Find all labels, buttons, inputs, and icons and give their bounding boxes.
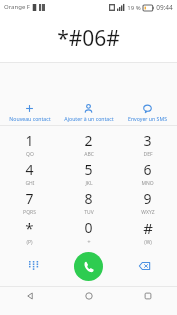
button[interactable]: 5 xyxy=(59,159,118,188)
staticText: 1 xyxy=(25,131,34,150)
button[interactable]: 6 xyxy=(118,159,177,188)
staticText: (P) xyxy=(26,239,33,246)
staticText: 6 xyxy=(143,160,152,179)
button[interactable]: Dialpad xyxy=(22,255,44,277)
staticText: 0 xyxy=(84,218,93,237)
button[interactable]: 8 xyxy=(59,188,118,217)
staticText: TUV xyxy=(84,209,94,216)
staticText: * xyxy=(25,218,34,238)
button[interactable]: Envoyer un SMS xyxy=(118,101,177,125)
staticText: PQRS xyxy=(23,209,36,216)
staticText: 19 % xyxy=(127,4,141,12)
staticText: GHI xyxy=(25,180,35,187)
staticText: # xyxy=(143,218,153,238)
button[interactable]: # xyxy=(118,217,177,246)
staticText: 9 xyxy=(143,189,152,208)
staticText: + xyxy=(87,238,91,246)
staticText: 3 xyxy=(143,131,152,150)
staticText: DEF xyxy=(143,151,153,158)
staticText: ABC xyxy=(84,151,94,158)
button[interactable]: Back xyxy=(0,286,59,305)
staticText: (W) xyxy=(144,239,152,246)
staticText: 5 xyxy=(84,160,93,179)
button[interactable]: Backspace xyxy=(133,255,155,277)
staticText: *#06# xyxy=(57,24,120,53)
staticText: 09:44 xyxy=(156,3,173,12)
button[interactable]: Nouveau contact xyxy=(0,101,59,125)
button[interactable]: 0 xyxy=(59,217,118,246)
staticText: 2 xyxy=(84,131,93,150)
button[interactable]: 2 xyxy=(59,130,118,159)
button[interactable]: Call xyxy=(74,252,103,281)
button[interactable]: Home xyxy=(59,286,118,305)
button[interactable]: 3 xyxy=(118,130,177,159)
staticText: JKL xyxy=(85,180,93,187)
button[interactable]: 4 xyxy=(0,159,59,188)
staticText: Envoyer un SMS xyxy=(128,115,167,122)
button[interactable]: 7 xyxy=(0,188,59,217)
staticText: Ajouter à un contact xyxy=(64,115,114,122)
staticText: WXYZ xyxy=(141,209,155,216)
button[interactable]: 9 xyxy=(118,188,177,217)
staticText: MNO xyxy=(141,180,154,187)
staticText: Orange F xyxy=(4,3,30,11)
staticText: Nouveau contact xyxy=(9,115,51,122)
button[interactable]: 1 xyxy=(0,130,59,159)
button[interactable]: Recents xyxy=(118,286,177,305)
button[interactable]: Ajouter à un contact xyxy=(59,101,118,125)
button[interactable]: * xyxy=(0,217,59,246)
staticText: 4 xyxy=(25,160,34,179)
staticText: 8 xyxy=(84,189,93,208)
staticText: 7 xyxy=(25,189,34,208)
staticText: QO xyxy=(26,151,34,158)
